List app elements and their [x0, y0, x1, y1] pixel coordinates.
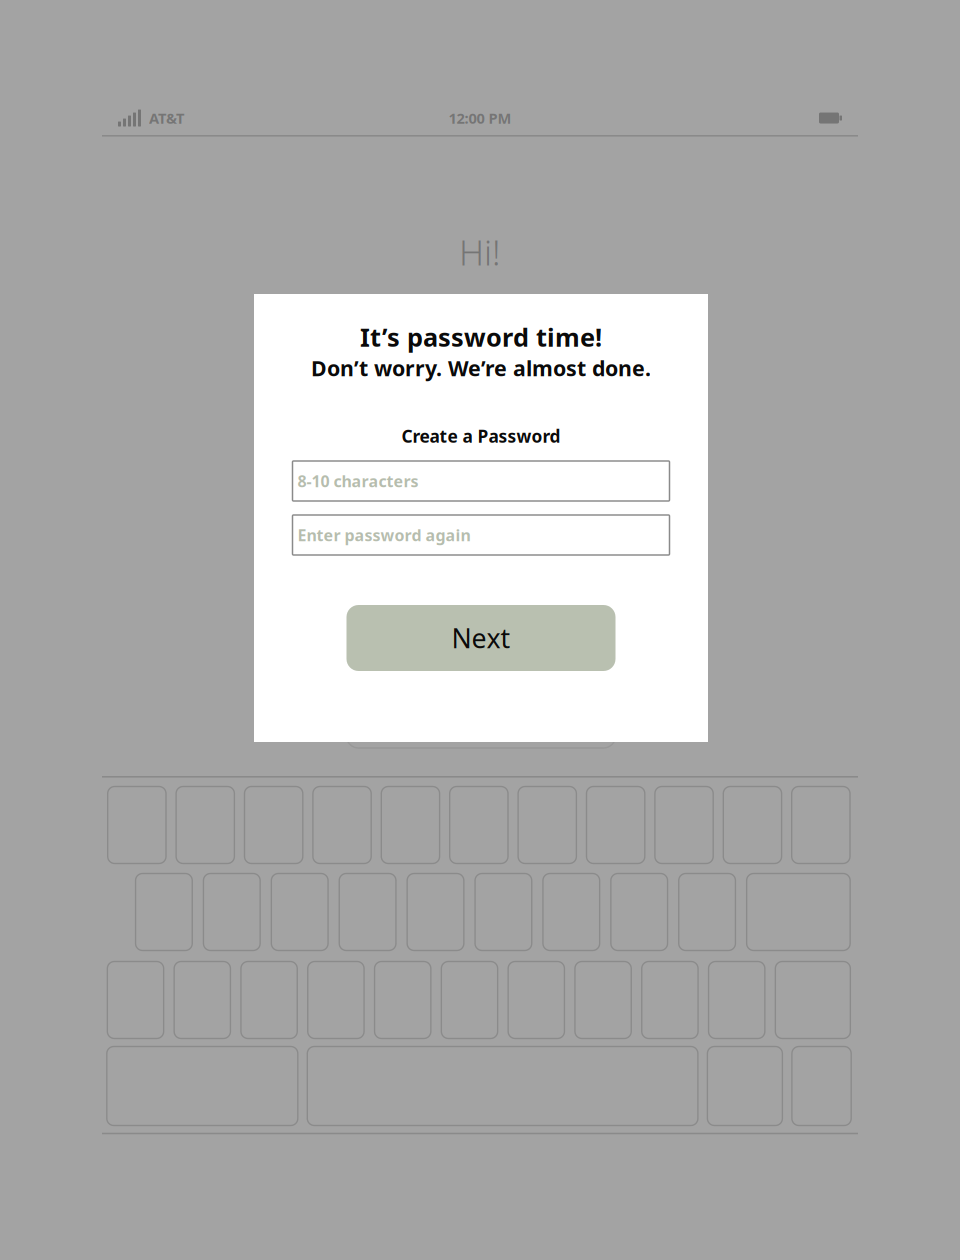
staticText: 12:00 PM	[448, 108, 511, 128]
button[interactable]: Key	[108, 786, 166, 863]
button[interactable]: Key	[107, 1046, 298, 1125]
button[interactable]: Key	[708, 961, 765, 1038]
button[interactable]: Key	[308, 961, 364, 1038]
staticText: Next	[451, 620, 510, 656]
button[interactable]: Key	[241, 961, 297, 1038]
staticText: 8-10 characters	[297, 470, 418, 492]
button[interactable]: Key	[375, 961, 431, 1038]
button[interactable]: Key	[775, 961, 850, 1038]
button[interactable]: Key	[679, 873, 735, 950]
button[interactable]: Key	[441, 961, 498, 1038]
button[interactable]: Key	[518, 786, 576, 863]
button[interactable]: Key	[655, 786, 713, 863]
button[interactable]: 8-10 characters	[292, 461, 669, 501]
button[interactable]: Key	[508, 961, 564, 1038]
button[interactable]: Key	[642, 961, 698, 1038]
button[interactable]: Key	[174, 961, 230, 1038]
button[interactable]: Key	[792, 786, 850, 863]
button[interactable]: Key	[271, 873, 328, 950]
button[interactable]: Key	[543, 873, 600, 950]
button[interactable]: Key	[203, 873, 260, 950]
button[interactable]: Key	[707, 1046, 782, 1125]
staticText: Hi!	[459, 229, 501, 275]
button[interactable]: Key	[176, 786, 234, 863]
button[interactable]: Key	[381, 786, 440, 863]
button[interactable]: Key	[586, 786, 645, 863]
button[interactable]: Key	[723, 786, 782, 863]
staticText: It’s password time!	[360, 320, 602, 354]
button[interactable]: Key	[307, 1046, 698, 1125]
button[interactable]: Key	[339, 873, 396, 950]
button[interactable]: Key	[575, 961, 631, 1038]
button[interactable]: Next	[346, 605, 615, 671]
button[interactable]: Key	[107, 961, 164, 1038]
button[interactable]: Key	[792, 1046, 851, 1125]
button[interactable]: Key	[450, 786, 508, 863]
button[interactable]: Key	[244, 786, 303, 863]
staticText: Enter password again	[297, 524, 470, 546]
button[interactable]: Key	[611, 873, 667, 950]
button[interactable]: Continue	[346, 682, 615, 748]
staticText: Create a Password	[401, 424, 560, 447]
button[interactable]: Key	[313, 786, 371, 863]
button[interactable]: Enter password again	[292, 515, 669, 555]
button[interactable]: Key	[407, 873, 464, 950]
button[interactable]: Key	[475, 873, 532, 950]
staticText: AT&T	[149, 108, 184, 128]
staticText: Don’t worry. We’re almost done.	[311, 354, 651, 382]
